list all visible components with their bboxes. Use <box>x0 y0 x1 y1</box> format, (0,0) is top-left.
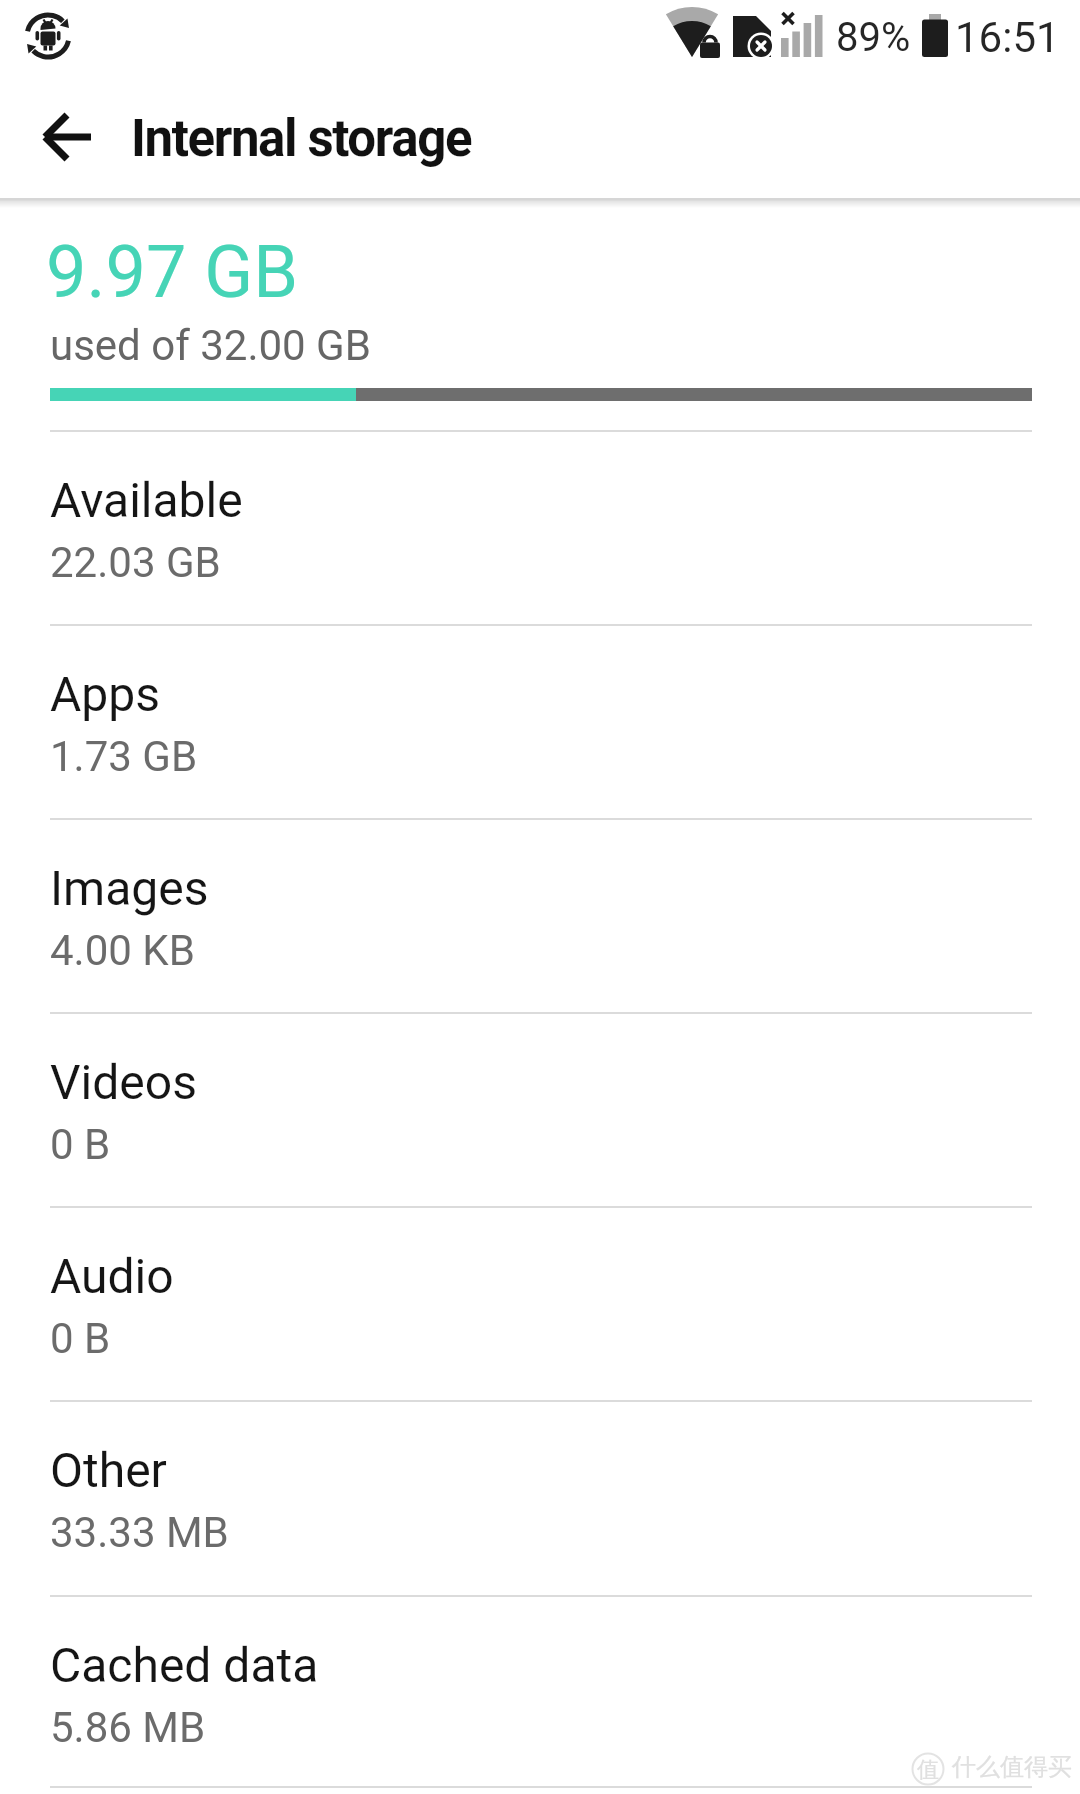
button[interactable]: Videos <box>0 1012 1080 1206</box>
staticText: Images <box>50 860 209 916</box>
staticText: Cached data <box>50 1637 319 1693</box>
staticText: 22.03 GB <box>50 538 221 587</box>
staticText: 89% <box>836 14 911 61</box>
staticText: 1.73 GB <box>50 732 198 781</box>
staticText: 0 B <box>50 1120 111 1169</box>
button[interactable]: Available <box>0 430 1080 624</box>
staticText: 5.86 MB <box>50 1703 206 1752</box>
button[interactable]: Cached data <box>0 1595 1080 1789</box>
staticText: 4.00 KB <box>50 926 195 975</box>
staticText: Other <box>50 1442 167 1498</box>
button[interactable]: Audio <box>0 1206 1080 1400</box>
button[interactable]: Apps <box>0 624 1080 818</box>
staticText: 33.33 MB <box>50 1508 229 1557</box>
staticText: used of 32.00 GB <box>50 321 371 370</box>
button[interactable]: Images <box>0 818 1080 1012</box>
staticText: 9.97 GB <box>46 230 299 314</box>
staticText: Audio <box>50 1248 174 1304</box>
button[interactable]: Other <box>0 1400 1080 1594</box>
staticText: 16:51 <box>955 13 1060 62</box>
staticText: Videos <box>50 1054 197 1110</box>
staticText: Apps <box>50 666 160 722</box>
staticText: 0 B <box>50 1314 111 1363</box>
staticText: 什么值得买 <box>952 1752 1072 1782</box>
staticText: Internal storage <box>131 109 472 169</box>
staticText: Available <box>50 472 243 528</box>
button[interactable] <box>24 96 108 180</box>
staticText: 值 <box>917 1756 939 1784</box>
